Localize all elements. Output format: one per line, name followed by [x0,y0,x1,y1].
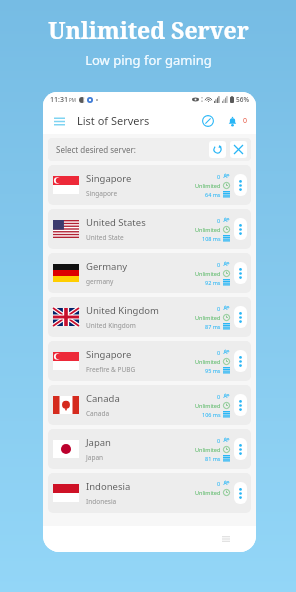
staticText: Select desired server: [56,144,136,155]
button[interactable]: Navigation [199,112,217,130]
button[interactable]: Menu [51,113,67,129]
staticText: United States [86,216,146,229]
staticText: 56% [236,95,249,104]
button[interactable]: Recents [218,531,234,547]
staticText: Unlimited [195,314,221,321]
staticText: germany [86,277,114,286]
staticText: United Kingdom [86,321,136,330]
button[interactable]: Japan [48,429,251,469]
staticText: 0 [217,480,221,487]
button[interactable]: More options [234,438,247,460]
staticText: Unlimited [195,402,221,409]
staticText: 87 ms [205,323,221,330]
staticText: Freefire & PUBG [86,365,136,374]
staticText: Unlimited Server [48,14,249,45]
staticText: Canada [86,409,110,418]
button[interactable]: Refresh [209,141,226,158]
button[interactable]: More options [234,394,247,416]
staticText: Unlimited [195,270,221,277]
staticText: Indonesia [86,480,131,493]
staticText: Unlimited [195,182,221,189]
staticText: Singapore [86,348,132,361]
staticText: 0 [217,305,221,312]
button[interactable]: More options [234,218,247,240]
staticText: 0 [217,261,221,268]
staticText: 0 [217,217,221,224]
staticText: 0 [217,173,221,180]
button[interactable]: Singapore [48,341,251,381]
button[interactable]: More options [234,174,247,196]
button[interactable]: More options [234,482,247,504]
staticText: 0 [243,116,248,126]
staticText: 0 [217,393,221,400]
staticText: Germany [86,260,128,273]
button[interactable]: Indonesia [48,473,251,513]
staticText: 64 ms [205,191,221,198]
button[interactable]: United States [48,209,251,249]
staticText: Unlimited [195,358,221,365]
button[interactable]: Notifications [223,112,241,130]
staticText: 0 [217,437,221,444]
staticText: List of Servers [77,113,150,128]
button[interactable]: United Kingdom [48,297,251,337]
staticText: 0 [217,349,221,356]
staticText: Low ping for gaming [85,51,212,69]
staticText: PM [69,97,76,103]
button[interactable]: Singapore [48,165,251,205]
staticText: Singapore [86,189,118,198]
staticText: Unlimited [195,226,221,233]
button[interactable]: More options [234,306,247,328]
button[interactable]: More options [234,350,247,372]
staticText: United State [86,233,124,242]
staticText: Japan [86,436,111,449]
staticText: 81 ms [205,455,221,462]
staticText: 92 ms [205,279,221,286]
staticText: 106 ms [202,411,221,418]
button[interactable]: Clear [230,141,247,158]
staticText: Singapore [86,172,132,185]
staticText: 11:31 [50,95,68,105]
staticText: Japan [86,453,104,462]
staticText: Unlimited [195,489,221,496]
button[interactable]: Canada [48,385,251,425]
button[interactable]: More options [234,262,247,284]
staticText: 108 ms [202,235,221,242]
staticText: 95 ms [205,367,221,374]
staticText: Unlimited [195,446,221,453]
staticText: United Kingdom [86,304,159,317]
staticText: Indonesia [86,497,117,506]
button[interactable]: Germany [48,253,251,293]
staticText: Canada [86,392,120,405]
